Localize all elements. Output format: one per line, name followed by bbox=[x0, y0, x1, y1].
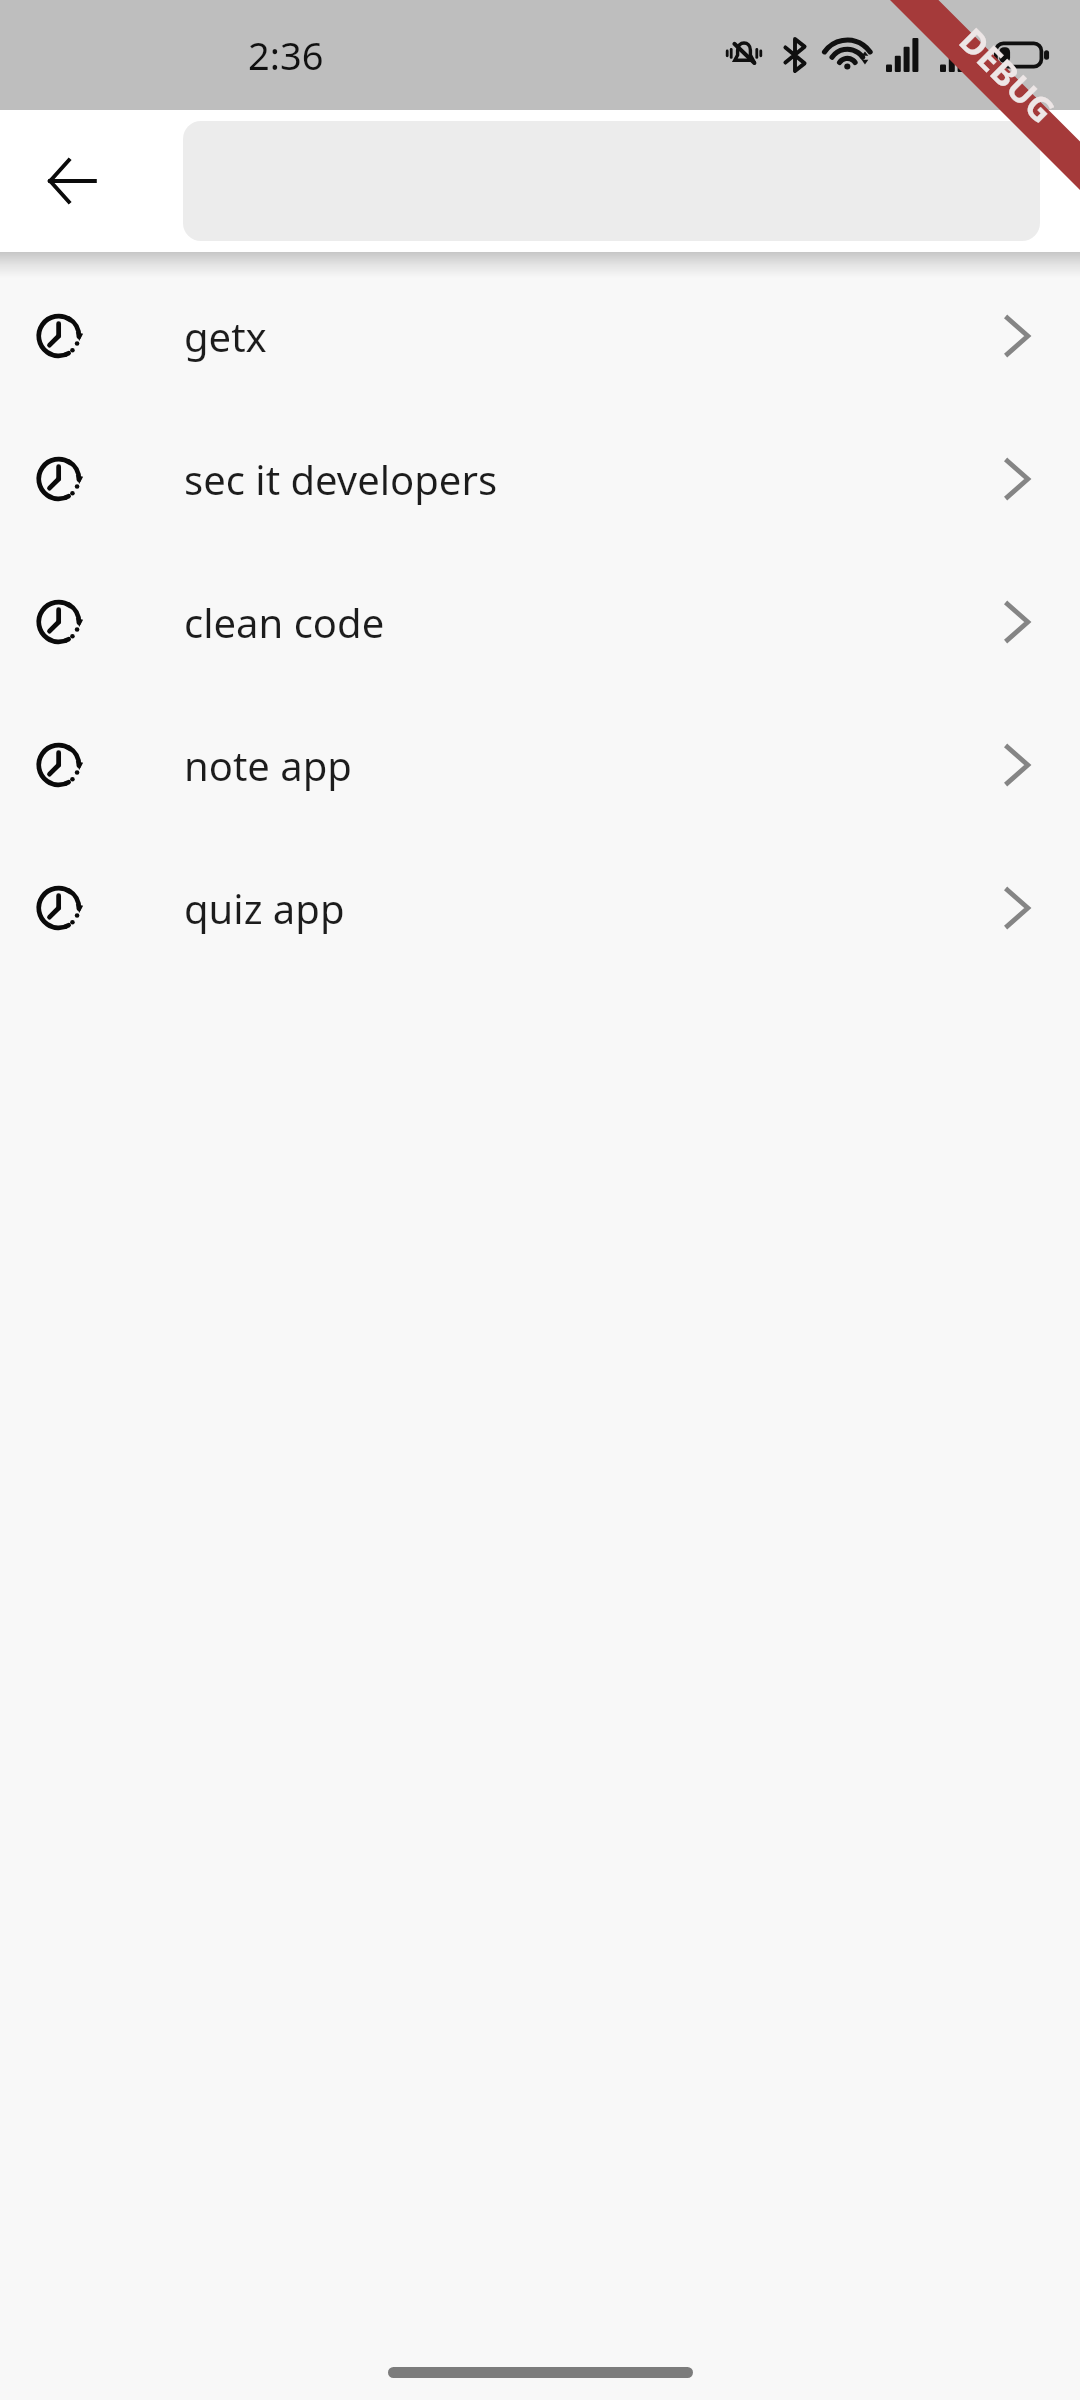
staticText: DEBUG bbox=[950, 17, 1065, 133]
button[interactable]: Back bbox=[18, 126, 128, 236]
button[interactable]: sec it developers bbox=[0, 407, 1080, 550]
staticText: 2:36 bbox=[248, 29, 324, 81]
staticText: getx bbox=[184, 309, 267, 363]
staticText: clean code bbox=[184, 595, 385, 649]
staticText: quiz app bbox=[184, 881, 345, 935]
button[interactable]: clean code bbox=[0, 550, 1080, 693]
button[interactable] bbox=[183, 121, 1040, 241]
button[interactable]: note app bbox=[0, 693, 1080, 836]
staticText: sec it developers bbox=[184, 452, 498, 506]
button[interactable]: getx bbox=[0, 264, 1080, 407]
button[interactable]: quiz app bbox=[0, 836, 1080, 979]
staticText: note app bbox=[184, 738, 352, 792]
